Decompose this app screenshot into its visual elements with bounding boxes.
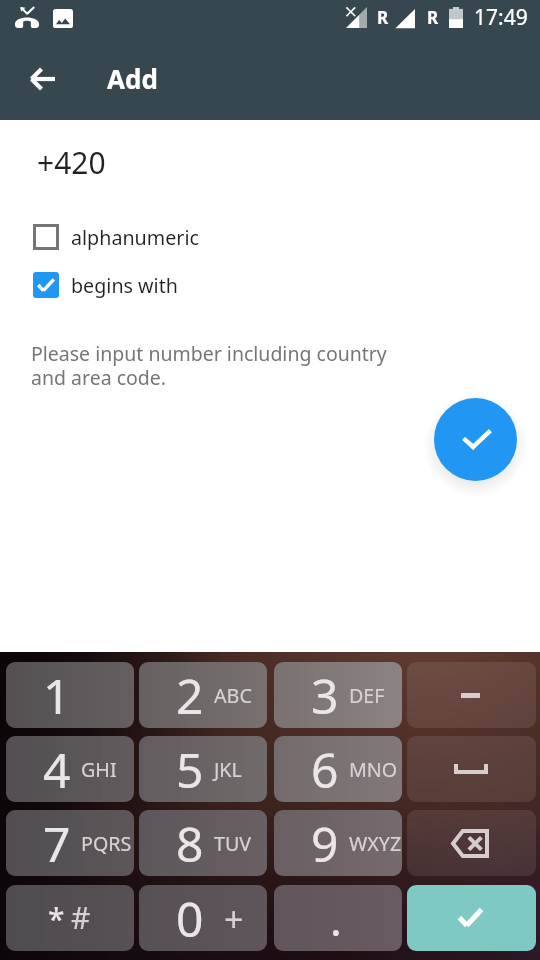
staticText: 2 <box>176 663 204 728</box>
other: Backspace <box>451 829 489 858</box>
button[interactable]: . <box>274 885 402 951</box>
staticText: 8 <box>176 811 204 876</box>
staticText: # <box>71 897 91 938</box>
staticText: TUV <box>214 830 252 857</box>
staticText: 9 <box>311 811 339 876</box>
button[interactable]: 0 <box>139 885 267 951</box>
staticText: ABC <box>214 682 252 709</box>
button[interactable]: Confirm <box>434 398 517 481</box>
button[interactable]: 5 <box>139 736 267 802</box>
staticText: alphanumeric <box>71 224 199 251</box>
button[interactable]: 1 <box>6 662 134 728</box>
button[interactable]: 8 <box>139 810 267 876</box>
staticText: PQRS <box>81 830 132 857</box>
other: Space <box>454 764 488 774</box>
staticText: R <box>377 6 389 29</box>
staticText: MNO <box>349 756 398 783</box>
button[interactable]: 4 <box>6 736 134 802</box>
button[interactable]: Enter <box>407 885 536 951</box>
staticText: + <box>224 896 244 942</box>
staticText: . <box>330 889 342 949</box>
staticText: WXYZ <box>349 830 402 857</box>
staticText: * <box>48 898 65 939</box>
button[interactable]: 6 <box>274 736 402 802</box>
staticText: 7 <box>43 811 71 876</box>
staticText: 1 <box>43 663 71 728</box>
button[interactable]: 7 <box>6 810 134 876</box>
button[interactable]: 2 <box>139 662 267 728</box>
button[interactable]: * <box>6 885 134 951</box>
staticText: 0 <box>176 886 204 951</box>
button[interactable]: begins with <box>0 265 540 305</box>
staticText: R <box>427 6 439 29</box>
staticText: +420 <box>37 142 106 183</box>
button[interactable]: alphanumeric <box>0 217 540 257</box>
staticText: Please input number including country an… <box>31 340 387 391</box>
staticText: GHI <box>81 756 117 783</box>
staticText: 6 <box>311 737 339 802</box>
button[interactable]: Space <box>407 736 536 802</box>
button[interactable]: 9 <box>274 810 402 876</box>
button[interactable]: Backspace <box>407 810 536 876</box>
button[interactable]: 3 <box>274 662 402 728</box>
button[interactable]: Back <box>13 52 69 108</box>
button[interactable]: Minus <box>407 662 536 728</box>
other: Enter <box>457 907 484 928</box>
staticText: JKL <box>214 756 242 783</box>
staticText: Add <box>107 61 158 96</box>
staticText: begins with <box>71 272 178 299</box>
staticText: 5 <box>176 737 204 802</box>
staticText: 4 <box>43 737 71 802</box>
staticText: DEF <box>349 682 385 709</box>
staticText: 3 <box>311 663 339 728</box>
staticText: 17:49 <box>474 3 528 32</box>
